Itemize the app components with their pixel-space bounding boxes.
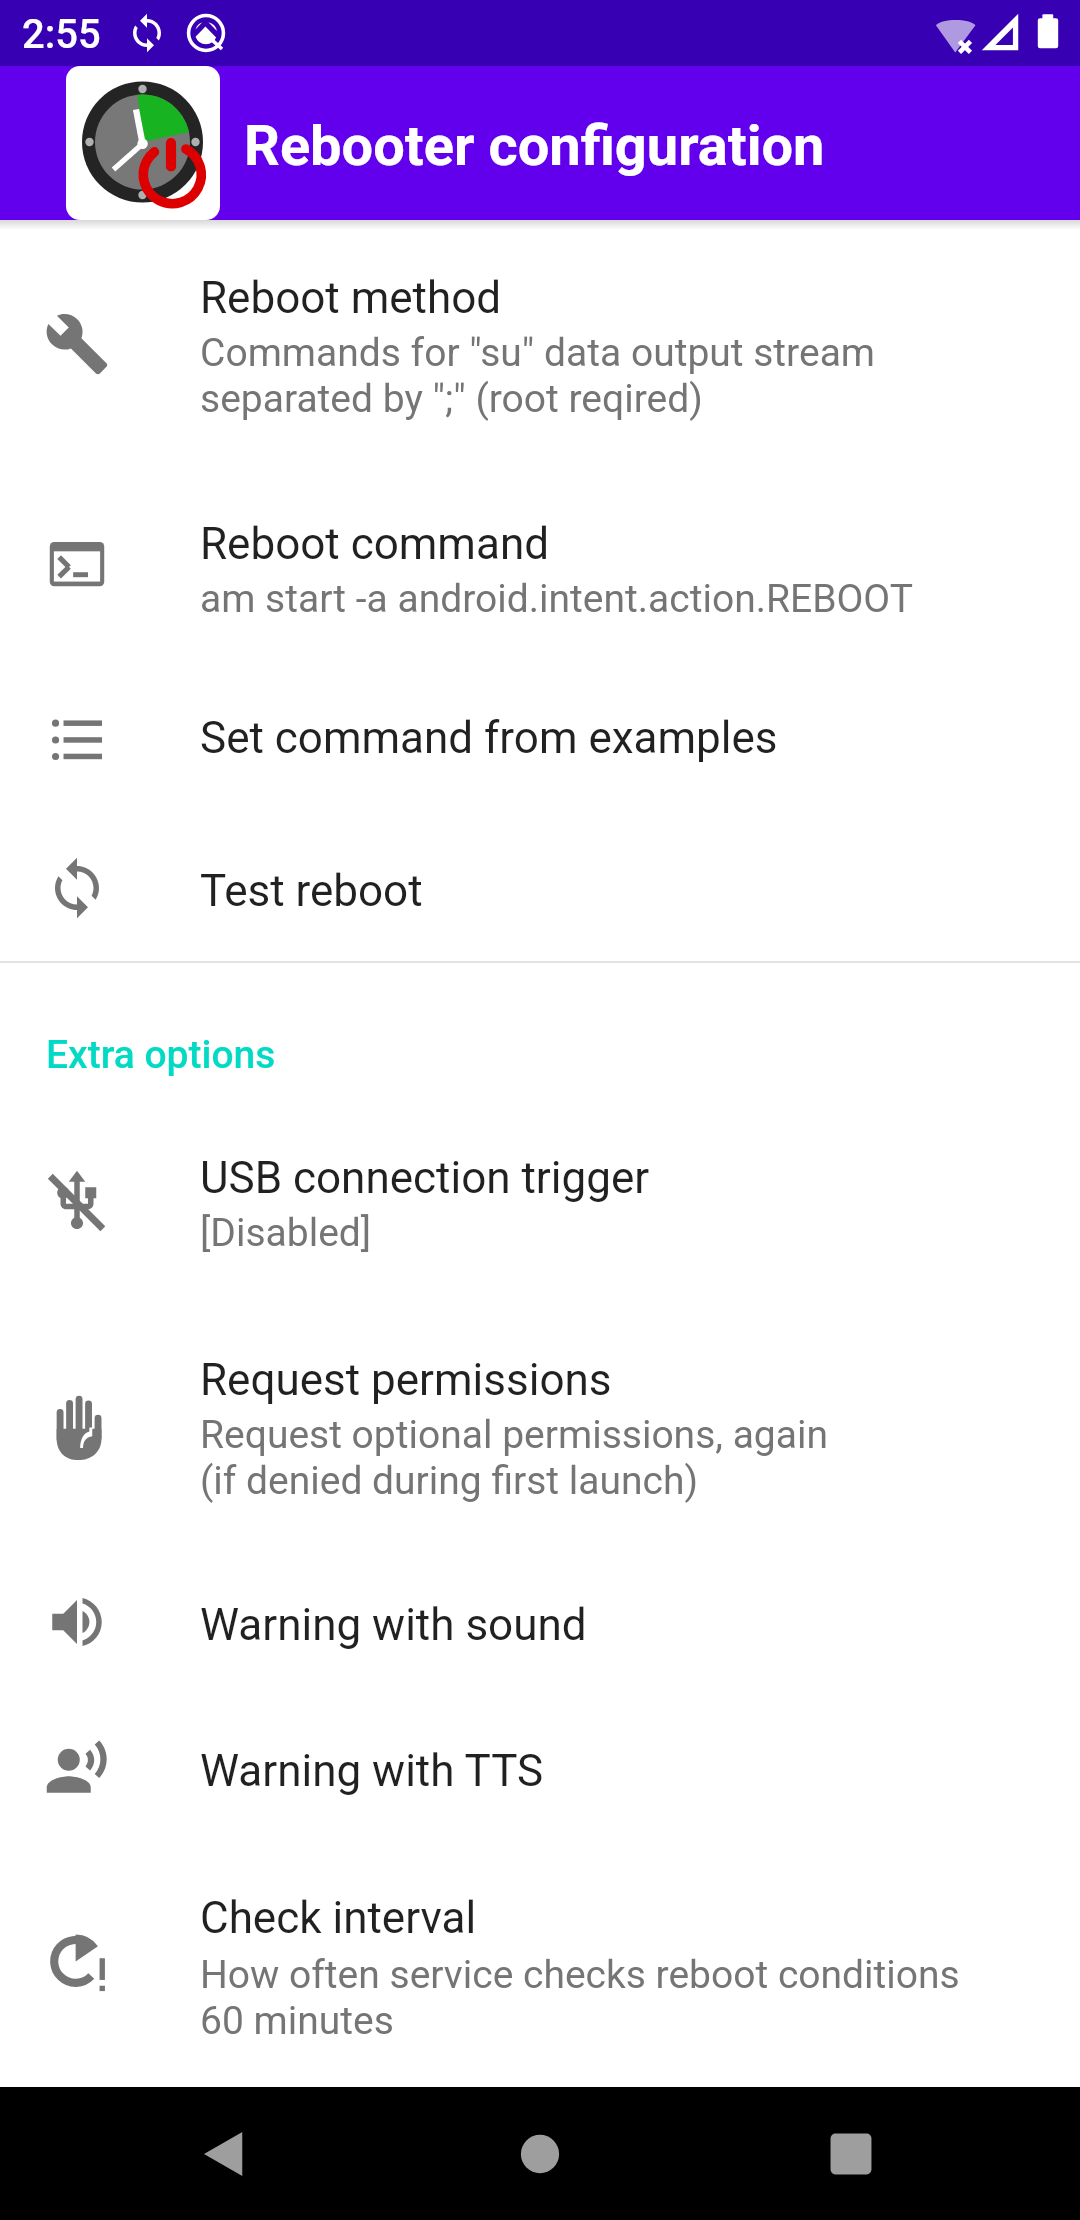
- button[interactable]: Home: [460, 2087, 620, 2220]
- staticText: Extra options: [46, 1032, 276, 1078]
- staticText: Reboot command: [200, 518, 549, 570]
- staticText: USB connection trigger: [200, 1152, 650, 1204]
- staticText: Check interval: [200, 1892, 477, 1944]
- button[interactable]: Warning with TTS: [0, 1723, 1080, 1819]
- button[interactable]: USB connection trigger: [0, 1130, 1080, 1278]
- staticText: 2:55: [22, 11, 101, 58]
- button[interactable]: Set command from examples: [0, 690, 1080, 786]
- button[interactable]: Warning with sound: [0, 1577, 1080, 1673]
- staticText: [Disabled]: [200, 1210, 372, 1256]
- button[interactable]: Test reboot: [0, 843, 1080, 939]
- button[interactable]: Recent apps: [771, 2087, 931, 2220]
- button[interactable]: Reboot command: [0, 496, 1080, 644]
- button[interactable]: Reboot method: [0, 250, 1080, 444]
- button[interactable]: Back: [146, 2087, 306, 2220]
- staticText: Test reboot: [200, 865, 423, 917]
- staticText: Request optional permissions, again (if …: [200, 1412, 828, 1504]
- staticText: Request permissions: [200, 1354, 612, 1406]
- staticText: Set command from examples: [200, 712, 778, 764]
- staticText: Warning with sound: [200, 1599, 587, 1651]
- staticText: Commands for "su" data output stream sep…: [200, 330, 876, 422]
- staticText: How often service checks reboot conditio…: [200, 1952, 960, 2044]
- staticText: Warning with TTS: [200, 1745, 544, 1797]
- staticText: Rebooter configuration: [244, 113, 825, 179]
- staticText: am start -a android.intent.action.REBOOT: [200, 576, 913, 622]
- button[interactable]: Check interval: [0, 1870, 1080, 2064]
- button[interactable]: App icon: [66, 66, 220, 220]
- button[interactable]: Request permissions: [0, 1332, 1080, 1526]
- staticText: Reboot method: [200, 272, 502, 324]
